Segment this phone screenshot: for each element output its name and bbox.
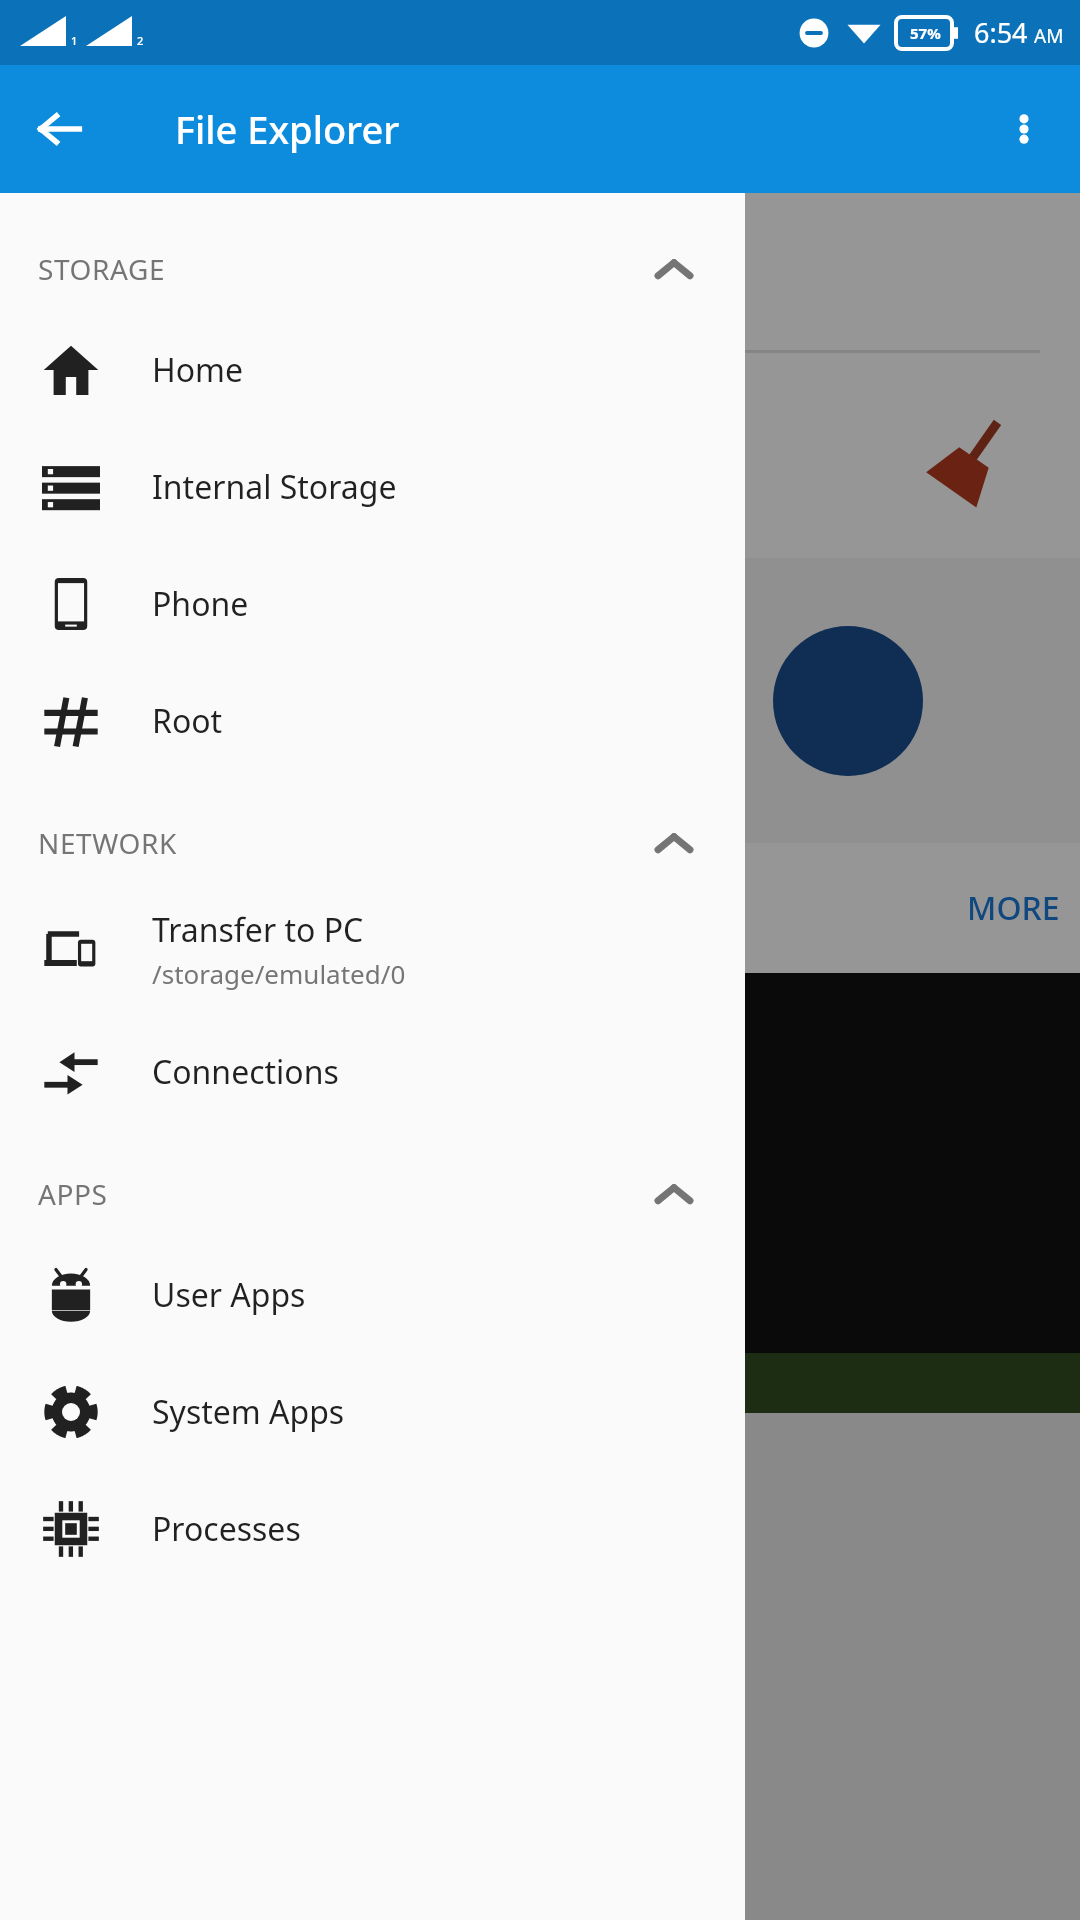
staticText: System Apps: [152, 1390, 345, 1434]
button[interactable]: APPS: [0, 1152, 745, 1236]
button[interactable]: Transfer to PC: [0, 885, 745, 1013]
staticText: Connections: [152, 1050, 339, 1094]
staticText: APPS: [38, 1175, 108, 1213]
button[interactable]: Root: [0, 662, 745, 779]
staticText: STORAGE: [38, 250, 166, 288]
staticText: 1: [71, 33, 78, 48]
staticText: Internal Storage: [152, 465, 397, 509]
staticText: MORE: [967, 886, 1060, 930]
button[interactable]: Processes: [0, 1470, 745, 1587]
button[interactable]: STORAGE: [0, 227, 745, 311]
staticText: Home: [152, 348, 244, 392]
staticText: NETWORK: [38, 824, 177, 862]
staticText: User Apps: [152, 1273, 306, 1317]
button[interactable]: Phone: [0, 545, 745, 662]
staticText: AM: [1034, 23, 1064, 49]
button[interactable]: NETWORK: [0, 801, 745, 885]
button[interactable]: Internal Storage: [0, 428, 745, 545]
staticText: Processes: [152, 1507, 301, 1551]
button[interactable]: Home: [0, 311, 745, 428]
staticText: Phone: [152, 582, 249, 626]
staticText: /storage/emulated/0: [152, 956, 406, 991]
staticText: 6:54: [974, 14, 1028, 51]
button[interactable]: Back: [24, 93, 96, 165]
staticText: 2: [137, 33, 144, 48]
button[interactable]: User Apps: [0, 1236, 745, 1353]
button[interactable]: More options: [988, 93, 1060, 165]
staticText: 57%: [910, 23, 941, 43]
staticText: File Explorer: [175, 103, 400, 155]
staticText: Root: [152, 699, 223, 743]
staticText: Transfer to PC: [152, 908, 364, 952]
button[interactable]: System Apps: [0, 1353, 745, 1470]
button[interactable]: Connections: [0, 1013, 745, 1130]
